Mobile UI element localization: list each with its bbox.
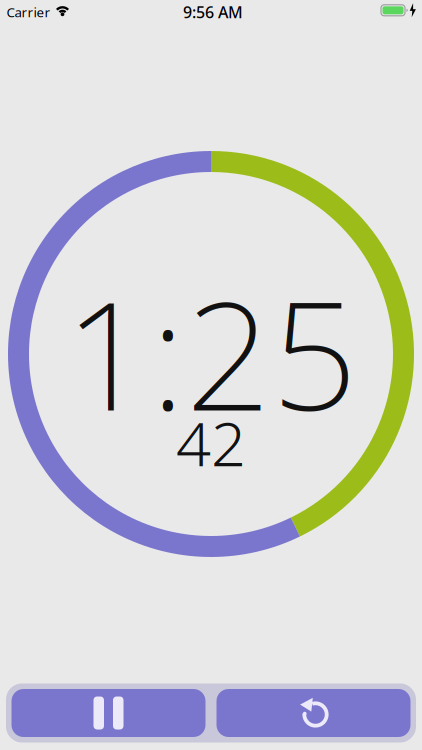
staticText: Carrier bbox=[6, 3, 50, 21]
staticText: 1:25 bbox=[64, 252, 357, 452]
button[interactable]: Reset bbox=[216, 689, 410, 737]
button[interactable]: Pause bbox=[11, 689, 205, 737]
staticText: 42 bbox=[176, 402, 246, 483]
staticText: 9:56 AM bbox=[183, 1, 243, 23]
